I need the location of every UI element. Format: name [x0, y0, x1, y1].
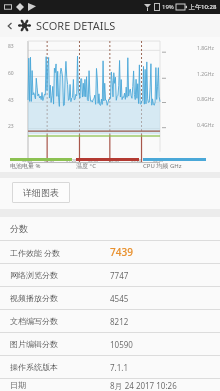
staticText: 网络浏览分数 [10, 270, 110, 280]
staticText: 10590 [110, 339, 133, 350]
staticText: 0.8GHz [197, 96, 214, 103]
staticText: 7439 [110, 245, 133, 259]
staticText: 视频播放分数 [10, 293, 110, 303]
staticText: 01:20 [66, 158, 77, 163]
staticText: 8月 24 2017 10:26 [110, 380, 177, 391]
staticText: 02:00 [88, 158, 99, 163]
button[interactable]: 日期 [0, 379, 220, 391]
button[interactable]: 视频播放分数 [0, 287, 220, 309]
staticText: 详细图表 [23, 187, 59, 198]
button[interactable]: 工作效能 分数 [0, 241, 220, 263]
staticText: 02:40 [44, 158, 55, 163]
staticText: 1.2GHz [197, 71, 214, 78]
staticText: 04:00 [153, 158, 164, 163]
staticText: 温度 °C [76, 162, 96, 170]
staticText: CPU 均频 GHz [143, 162, 182, 170]
staticText: 19% [162, 3, 174, 11]
staticText: 7.1.1 [110, 362, 129, 373]
staticText: 03:20 [131, 158, 142, 163]
staticText: 工作效能 分数 [10, 247, 110, 258]
staticText: 23 [8, 123, 14, 130]
staticText: 02:40 [109, 158, 120, 163]
staticText: 60 [8, 70, 14, 77]
button[interactable]: 网络浏览分数 [0, 264, 220, 286]
button[interactable]: 详细图表 [12, 182, 70, 203]
staticText: 上午10:28 [189, 3, 217, 11]
staticText: 图片编辑分数 [10, 339, 110, 349]
button[interactable]: 图片编辑分数 [0, 333, 220, 355]
staticText: 83 [8, 43, 14, 50]
button[interactable]: 文档编写分数 [0, 310, 220, 332]
staticText: 文档编写分数 [10, 316, 110, 326]
button[interactable]: 操作系统版本 [0, 356, 220, 378]
staticText: 1.8GHz [197, 45, 214, 52]
staticText: 7747 [110, 270, 129, 281]
staticText: 02:00 [22, 158, 33, 163]
staticText: SCORE DETAILS [36, 18, 116, 33]
staticText: 8212 [110, 316, 129, 327]
staticText: 电池电量 % [10, 162, 41, 170]
staticText: 分数 [10, 223, 28, 234]
staticText: 0.4GHz [197, 122, 214, 129]
staticText: 日期 [10, 380, 110, 390]
staticText: 43 [8, 97, 14, 104]
staticText: 操作系统版本 [10, 362, 110, 372]
staticText: 4545 [110, 293, 129, 304]
button[interactable]: Back [3, 19, 17, 33]
